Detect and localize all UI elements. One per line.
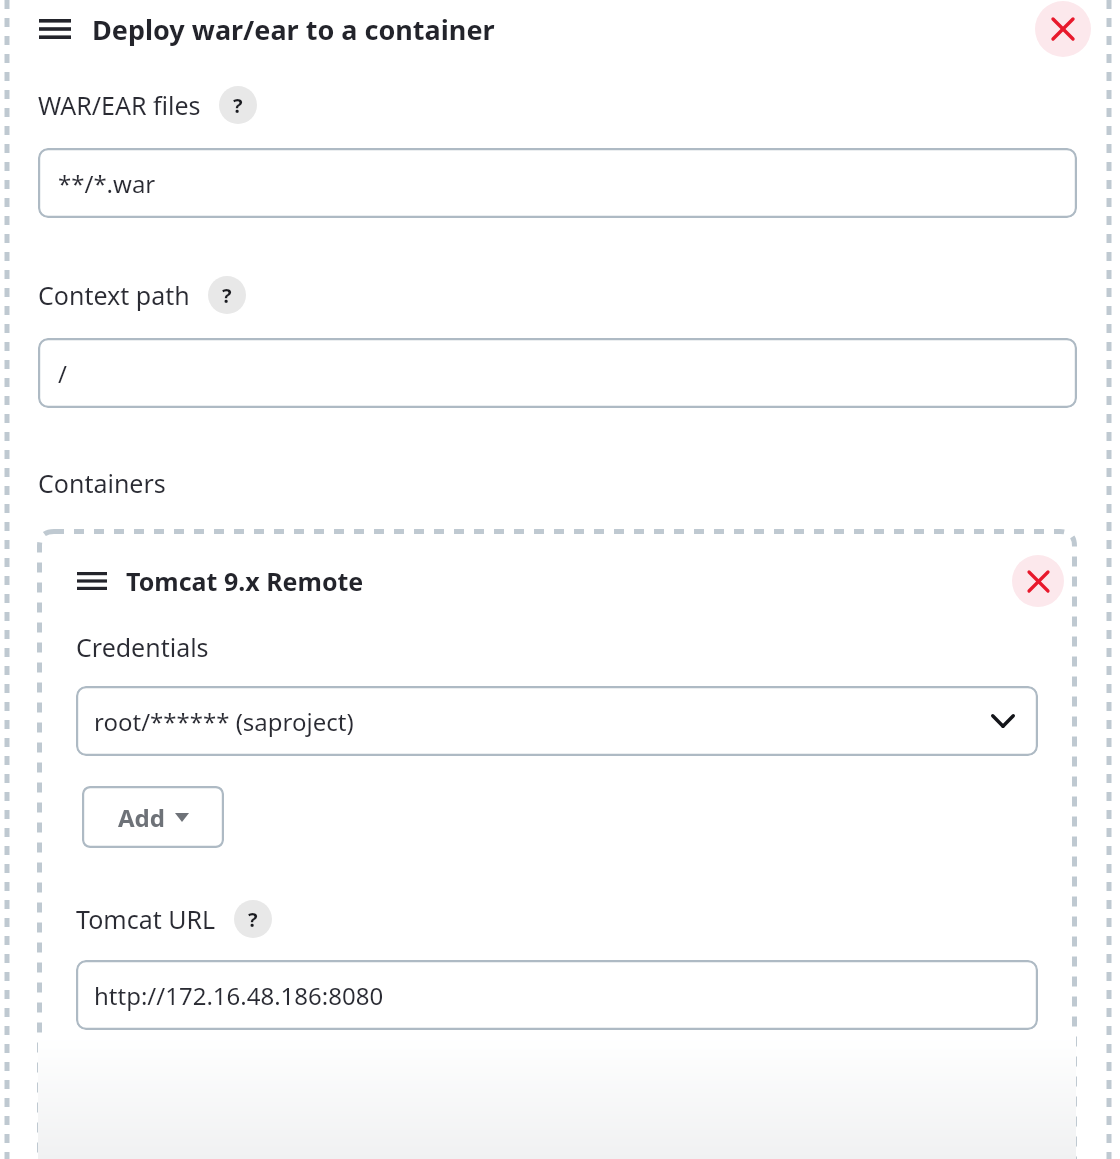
button[interactable]: root/****** (saproject) bbox=[76, 686, 1038, 756]
staticText: Credentials bbox=[76, 630, 209, 664]
button[interactable]: Close bbox=[1035, 1, 1091, 57]
button[interactable]: Add bbox=[82, 786, 224, 848]
button[interactable]: Help for WAR/EAR files bbox=[219, 86, 257, 124]
staticText: WAR/EAR files bbox=[38, 88, 201, 122]
staticText: Tomcat URL bbox=[76, 902, 216, 936]
staticText: / bbox=[58, 357, 67, 390]
button[interactable]: Remove container bbox=[1012, 555, 1064, 607]
staticText: Deploy war/ear to a container bbox=[92, 11, 495, 48]
staticText: root/****** (saproject) bbox=[94, 705, 354, 738]
staticText: ? bbox=[248, 906, 258, 933]
staticText: Containers bbox=[38, 466, 166, 500]
staticText: http://172.16.48.186:8080 bbox=[94, 979, 384, 1012]
staticText: ? bbox=[233, 92, 243, 119]
staticText: Tomcat 9.x Remote bbox=[126, 564, 364, 598]
button[interactable]: / bbox=[38, 338, 1077, 408]
button[interactable]: Help for Context path bbox=[208, 276, 246, 314]
button[interactable]: **/*.war bbox=[38, 148, 1077, 218]
button[interactable]: Reorder bbox=[38, 12, 72, 46]
staticText: Context path bbox=[38, 278, 190, 312]
button[interactable]: http://172.16.48.186:8080 bbox=[76, 960, 1038, 1030]
button[interactable]: Help for Tomcat URL bbox=[234, 900, 272, 938]
staticText: ? bbox=[222, 282, 232, 309]
button[interactable]: Reorder container bbox=[76, 566, 108, 596]
staticText: **/*.war bbox=[58, 167, 156, 200]
staticText: Add bbox=[118, 801, 165, 834]
